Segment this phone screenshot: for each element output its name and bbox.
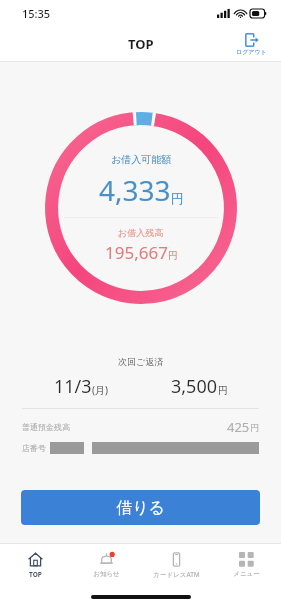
staticText: 円 [171,190,184,206]
button[interactable]: メニュー [211,544,281,586]
button[interactable]: お知らせ [71,544,141,586]
staticText: 425 [227,418,250,436]
staticText: カードレスATM [153,570,200,579]
staticText: 円 [218,384,228,397]
button[interactable]: 借りる [21,490,260,525]
staticText: 195,667 [105,241,168,264]
staticText: ログアウト [236,48,267,56]
button[interactable]: カードレスATM [141,544,211,586]
button[interactable]: ログアウト [232,31,271,58]
staticText: お借入残高 [118,227,164,238]
staticText: メニュー [233,570,260,578]
staticText: (月) [92,383,108,397]
staticText: 次回ご返済 [118,356,164,367]
staticText: 店番号 [22,443,46,453]
staticText: 11/3 [54,374,92,399]
staticText: お知らせ [93,570,120,578]
button[interactable]: TOP [0,544,71,586]
staticText: 3,500 [171,374,218,399]
staticText: 借りる [116,498,165,518]
staticText: TOP [29,570,42,579]
staticText: お借入可能額 [111,153,172,166]
staticText: 円 [250,422,259,433]
staticText: 円 [168,249,178,262]
staticText: 4,333 [99,171,171,209]
staticText: TOP [128,35,154,53]
staticText: 普通預金残高 [22,422,70,432]
staticText: 15:35 [22,6,51,21]
